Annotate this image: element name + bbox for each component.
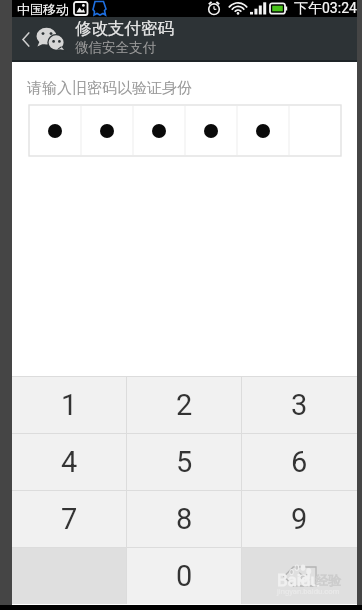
staticText: 中国移动 (17, 1, 69, 17)
staticText: 3 (291, 388, 308, 422)
button[interactable]: 7 (12, 491, 126, 547)
button[interactable]: 3 (242, 377, 357, 433)
staticText: 2 (176, 388, 193, 422)
staticText: jingyan.baidu.com (277, 587, 340, 596)
staticText: 0 (176, 559, 193, 593)
button[interactable]: 2 (127, 377, 241, 433)
staticText: 5 (176, 445, 193, 479)
button[interactable]: 9 (242, 491, 357, 547)
button[interactable]: 0 (127, 548, 241, 604)
staticText: 下午03:24 (294, 0, 357, 17)
staticText: 微信安全支付 (75, 39, 156, 56)
button[interactable]: Delete (242, 548, 357, 604)
button[interactable]: 5 (127, 434, 241, 490)
button[interactable]: Back (12, 17, 39, 60)
button[interactable]: 4 (12, 434, 126, 490)
staticText: 请输入旧密码以验证身份 (27, 79, 192, 98)
staticText: 经验 (315, 572, 341, 588)
staticText: 9 (291, 502, 308, 536)
staticText: 4 (61, 445, 78, 479)
staticText: 1 (61, 388, 78, 422)
button[interactable]: 6 (242, 434, 357, 490)
staticText: Baidu (277, 570, 320, 590)
staticText: 6 (291, 445, 308, 479)
staticText: 8 (176, 502, 193, 536)
other: Delete (283, 566, 317, 587)
staticText: 7 (61, 502, 78, 536)
button[interactable]: 1 (12, 377, 126, 433)
staticText: 修改支付密码 (75, 18, 174, 39)
button[interactable]: 8 (127, 491, 241, 547)
